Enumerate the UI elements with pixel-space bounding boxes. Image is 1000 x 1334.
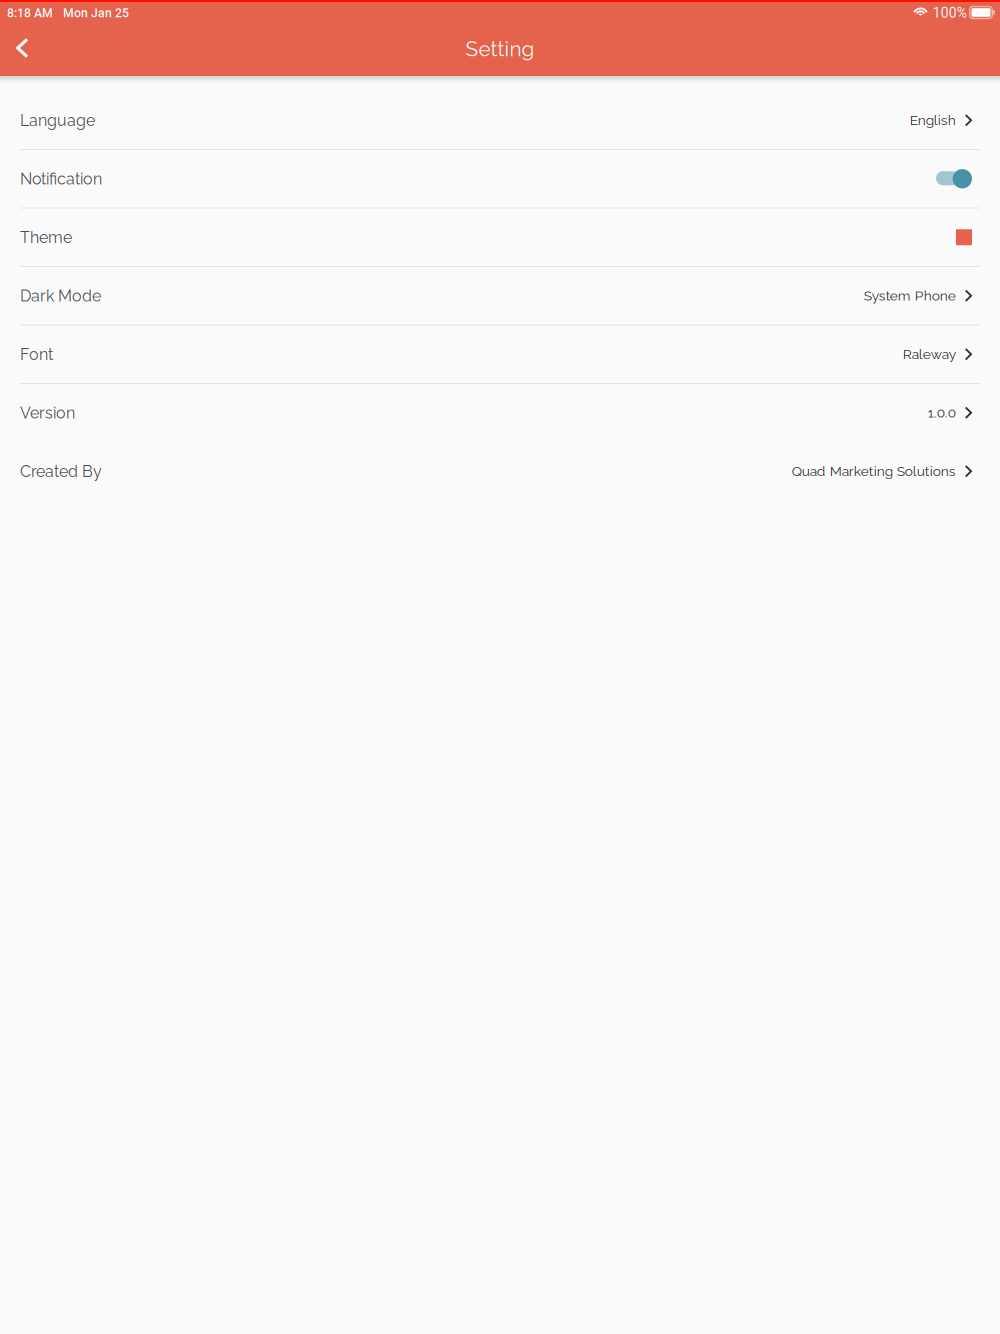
button[interactable]: Language [0, 91, 1000, 150]
staticText: 1.0.0 [928, 405, 956, 421]
staticText: Setting [465, 37, 534, 61]
staticText: Dark Mode [20, 286, 101, 305]
button[interactable]: Font [0, 325, 1000, 384]
staticText: Mon Jan 25 [63, 6, 129, 20]
staticText: Theme [20, 228, 72, 247]
staticText: Created By [20, 462, 102, 481]
staticText: Raleway [903, 346, 956, 362]
button[interactable]: Back [0, 28, 47, 72]
staticText: Quad Marketing Solutions [792, 463, 956, 479]
button[interactable]: Created By [0, 442, 1000, 501]
button[interactable]: Theme [0, 208, 1000, 267]
staticText: 100% [933, 5, 967, 21]
staticText: Language [20, 111, 95, 130]
staticText: 8:18 AM [7, 6, 53, 20]
staticText: System Phone [864, 288, 956, 304]
staticText: Version [20, 403, 75, 422]
button[interactable]: Dark Mode [0, 267, 1000, 325]
button[interactable]: Version [0, 384, 1000, 442]
button[interactable]: Notification [0, 150, 1000, 208]
staticText: Font [20, 345, 53, 364]
staticText: Notification [20, 169, 102, 188]
staticText: English [910, 112, 956, 128]
